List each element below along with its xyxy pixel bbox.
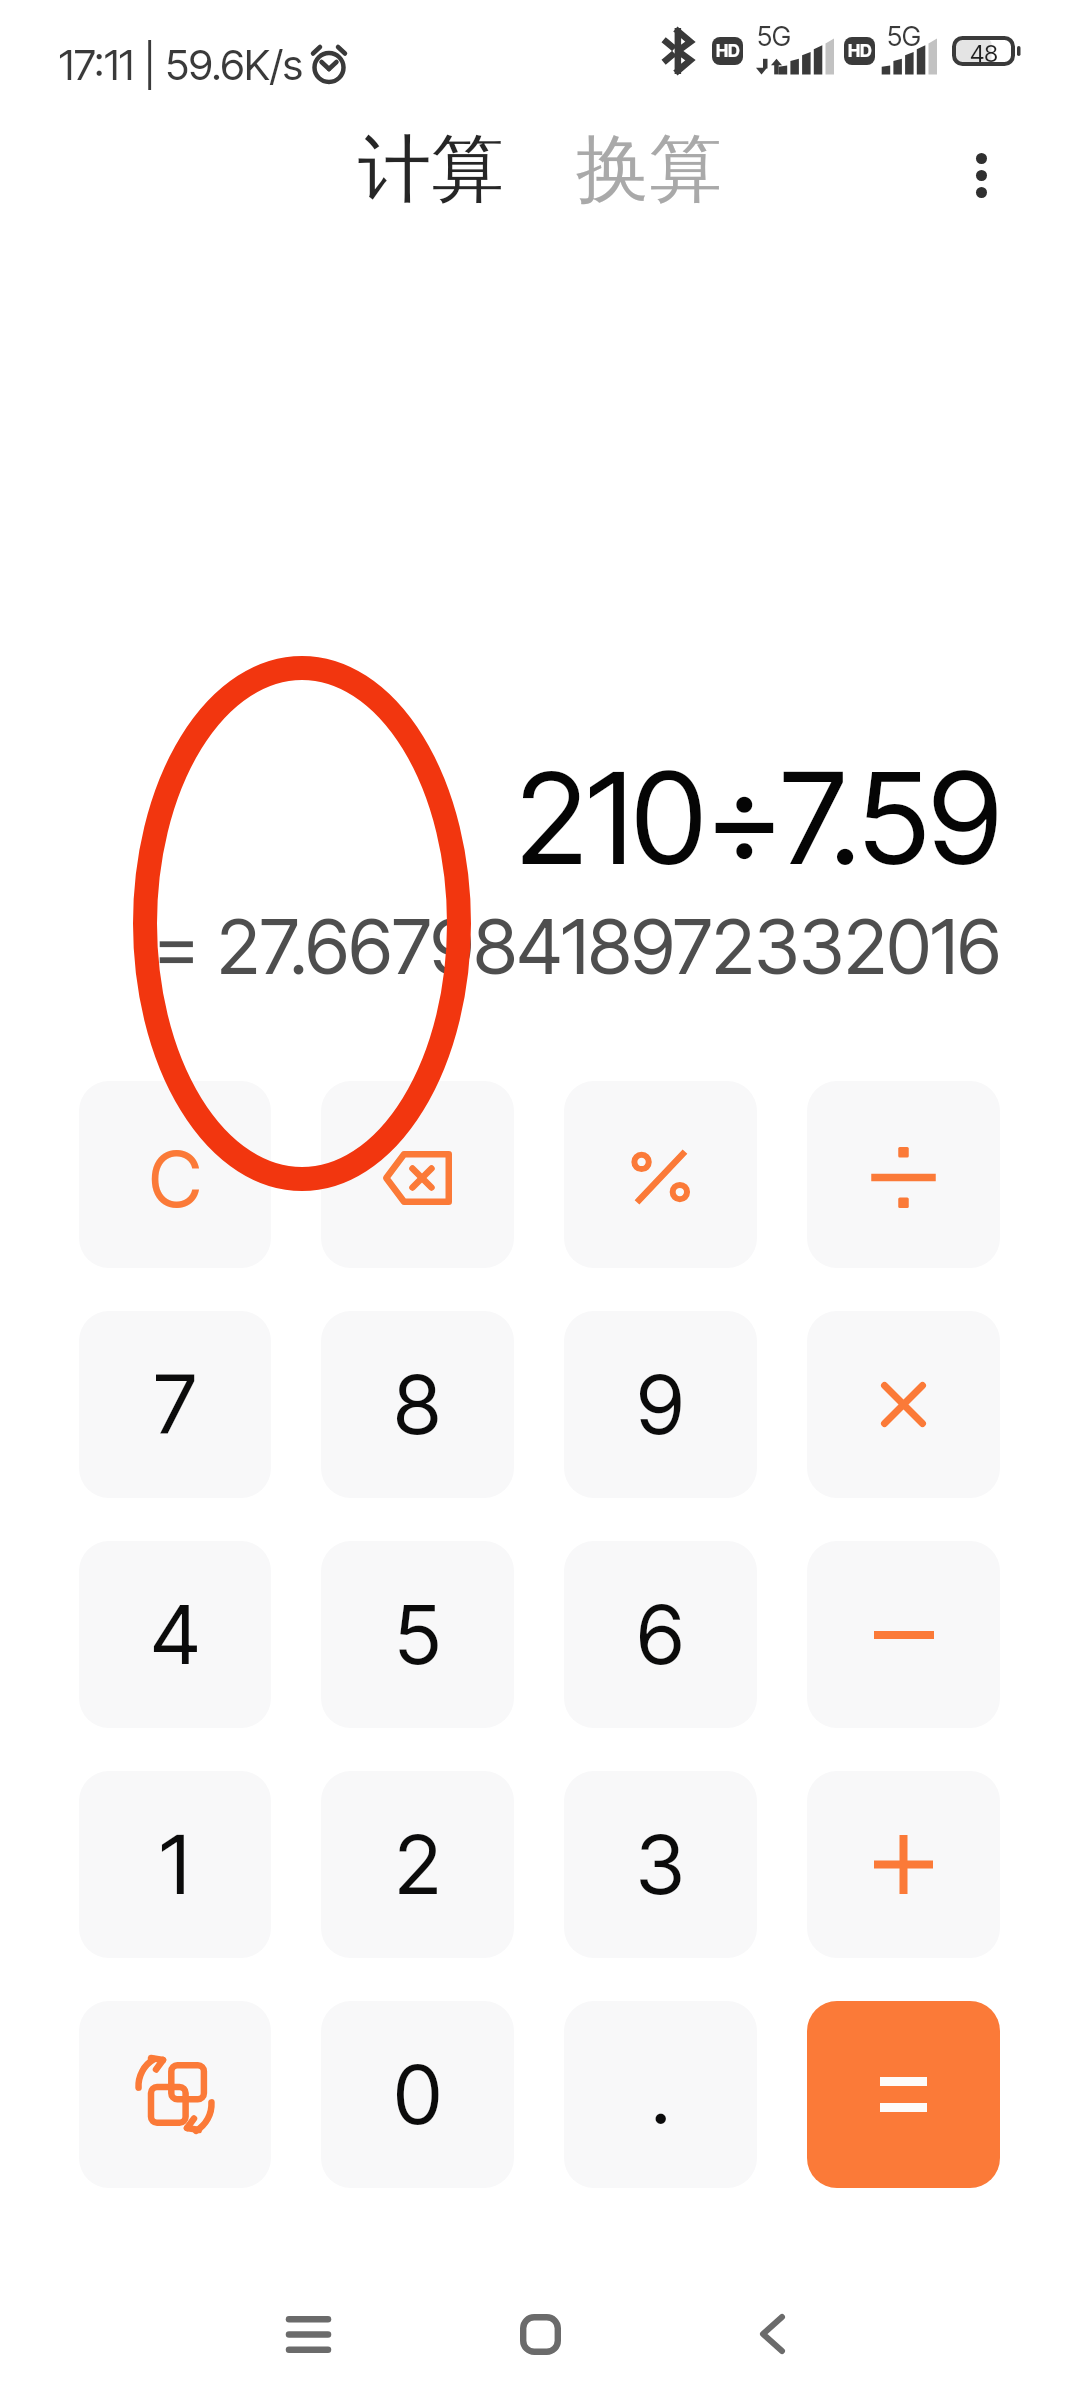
button[interactable]: Clear (79, 1081, 271, 1268)
button[interactable]: Backspace (321, 1081, 514, 1268)
staticText: 5G (757, 20, 791, 53)
button[interactable]: Home (424, 2264, 656, 2400)
button[interactable]: 4 (79, 1541, 271, 1728)
staticText: 210÷7.59 (516, 741, 1002, 895)
button[interactable]: Multiply (807, 1311, 1000, 1498)
button[interactable]: 3 (564, 1771, 757, 1958)
button[interactable]: Plus (807, 1771, 1000, 1958)
staticText: 9 (637, 1355, 684, 1454)
staticText: 3 (636, 1815, 685, 1914)
staticText: HD (848, 41, 872, 62)
button[interactable]: Equals (807, 2001, 1000, 2188)
staticText: C (149, 1132, 202, 1225)
staticText: 6 (637, 1585, 684, 1684)
staticText: 5 (395, 1585, 441, 1684)
button[interactable]: 7 (79, 1311, 271, 1498)
button[interactable]: Back (656, 2264, 888, 2400)
staticText: HD (716, 41, 740, 62)
button[interactable]: Divide (807, 1081, 1000, 1268)
button[interactable]: Percent (564, 1081, 757, 1268)
staticText: 2 (395, 1815, 441, 1914)
staticText: 4 (151, 1585, 200, 1684)
button[interactable]: 9 (564, 1311, 757, 1498)
staticText: . (651, 2045, 671, 2144)
staticText: 5G (887, 20, 921, 53)
button[interactable]: Recents (192, 2264, 424, 2400)
button[interactable]: 0 (321, 2001, 514, 2188)
staticText: 7 (154, 1355, 197, 1454)
staticText: = 27.66798418972332016 (153, 900, 1001, 992)
button[interactable]: More options (935, 129, 1027, 221)
button[interactable]: Minus (807, 1541, 1000, 1728)
staticText: 0 (394, 2045, 442, 2144)
button[interactable]: 计算 (352, 114, 510, 226)
button[interactable]: . (564, 2001, 757, 2188)
button[interactable]: 8 (321, 1311, 514, 1498)
staticText: 8 (394, 1355, 441, 1454)
staticText: 换算 (576, 124, 722, 216)
staticText: 计算 (358, 124, 504, 216)
button[interactable]: 6 (564, 1541, 757, 1728)
staticText: 48 (970, 39, 998, 68)
staticText: 17:11 | 59.6K/s (59, 39, 303, 90)
button[interactable]: 换算 (570, 114, 728, 226)
button[interactable]: 5 (321, 1541, 514, 1728)
button[interactable]: 1 (79, 1771, 271, 1958)
button[interactable]: Unit converter (79, 2001, 271, 2188)
staticText: 1 (160, 1815, 190, 1914)
button[interactable]: 2 (321, 1771, 514, 1958)
